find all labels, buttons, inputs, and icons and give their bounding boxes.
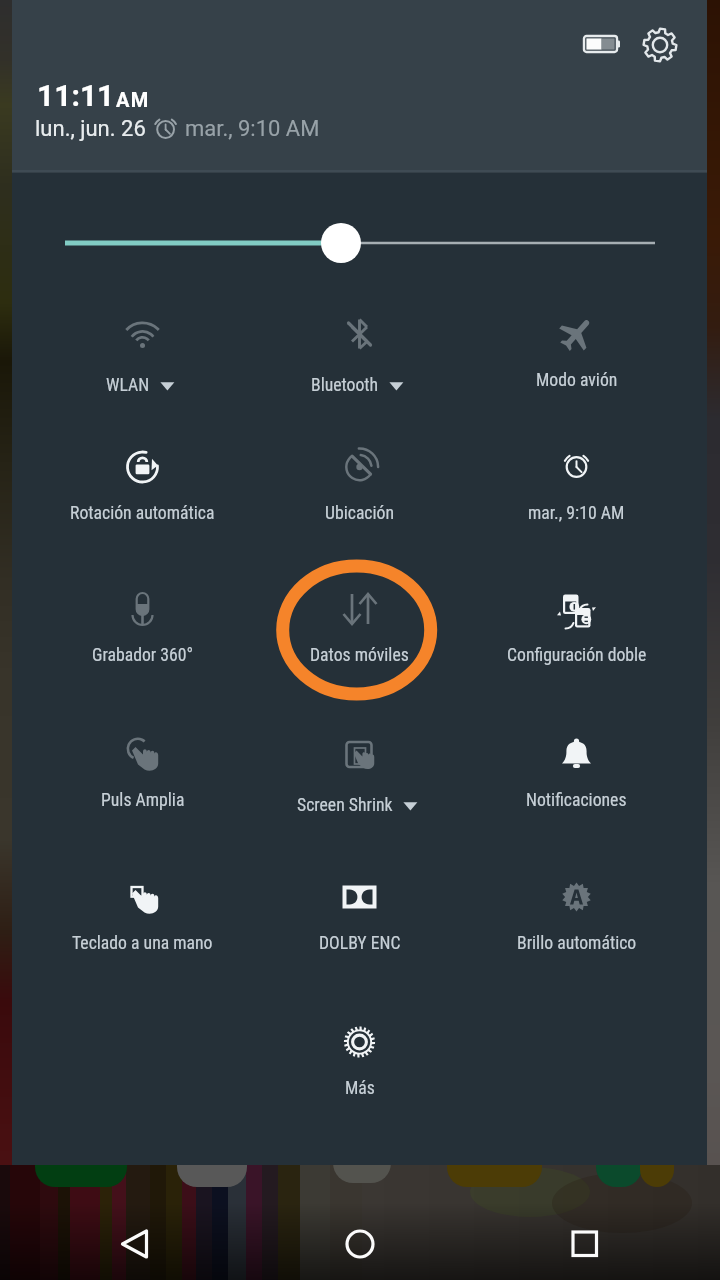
staticText: 11:11 xyxy=(37,78,115,113)
button[interactable]: mar., 9:10 AM xyxy=(468,395,685,539)
staticText: WLAN xyxy=(106,375,150,396)
staticText: Puls Amplia xyxy=(101,790,185,811)
staticText: Ubicación xyxy=(325,503,395,524)
button[interactable]: Teclado a una mano xyxy=(34,825,251,969)
button[interactable]: Battery xyxy=(568,22,624,66)
button[interactable]: Más xyxy=(251,970,468,1114)
button[interactable]: WLAN xyxy=(34,262,251,406)
button[interactable]: DOLBY ENC xyxy=(251,825,468,969)
button[interactable]: Modo avión xyxy=(468,262,685,406)
button[interactable]: Ubicación xyxy=(251,395,468,539)
staticText: Rotación automática xyxy=(70,503,215,524)
button[interactable]: Rotación automática xyxy=(34,395,251,539)
button[interactable]: Datos móviles xyxy=(251,537,468,681)
button[interactable]: Brillo automático xyxy=(468,825,685,969)
staticText: Datos móviles xyxy=(310,645,409,666)
staticText: Grabador 360° xyxy=(92,645,194,666)
staticText: DOLBY ENC xyxy=(319,933,401,954)
button[interactable]: Recents xyxy=(561,1220,609,1268)
staticText: Notificaciones xyxy=(526,790,627,811)
button[interactable]: Brightness xyxy=(45,213,675,273)
staticText: Configuración doble xyxy=(507,645,647,666)
staticText: Bluetooth xyxy=(311,375,379,396)
staticText: Brillo automático xyxy=(517,933,637,954)
button[interactable]: Settings xyxy=(636,21,684,69)
button[interactable]: Grabador 360° xyxy=(34,537,251,681)
staticText: mar., 9:10 AM xyxy=(185,116,320,142)
staticText: mar., 9:10 AM xyxy=(528,503,625,524)
staticText: lun., jun. 26 xyxy=(35,116,146,142)
staticText: Más xyxy=(345,1078,375,1099)
button[interactable]: Home xyxy=(336,1220,384,1268)
staticText: Screen Shrink xyxy=(297,795,393,816)
staticText: AM xyxy=(116,88,150,111)
staticText: Teclado a una mano xyxy=(72,933,213,954)
button[interactable]: Configuración doble xyxy=(468,537,685,681)
button[interactable]: Back xyxy=(111,1220,159,1268)
button[interactable]: Notificaciones xyxy=(468,682,685,826)
button[interactable]: Puls Amplia xyxy=(34,682,251,826)
button[interactable]: Screen Shrink xyxy=(251,682,468,826)
button[interactable]: Bluetooth xyxy=(251,262,468,406)
staticText: Modo avión xyxy=(536,370,618,391)
